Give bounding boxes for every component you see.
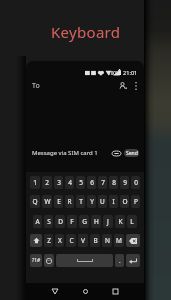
button[interactable]: 7 bbox=[98, 176, 107, 189]
button[interactable]: F bbox=[67, 215, 77, 228]
staticText: E bbox=[57, 197, 61, 206]
staticText: W bbox=[44, 197, 51, 206]
staticText: 1 bbox=[33, 178, 37, 187]
button[interactable]: Enter bbox=[126, 254, 140, 267]
staticText: 9 bbox=[123, 178, 127, 187]
button[interactable]: Space bbox=[56, 254, 113, 267]
button[interactable]: G bbox=[79, 215, 89, 228]
staticText: J bbox=[107, 217, 109, 226]
button[interactable]: Add contact bbox=[115, 78, 131, 94]
staticText: K bbox=[118, 217, 123, 226]
button[interactable]: R bbox=[65, 195, 74, 208]
button[interactable]: Period bbox=[115, 254, 124, 267]
button[interactable]: M bbox=[114, 234, 124, 247]
button[interactable]: 0 bbox=[131, 176, 140, 189]
staticText: T bbox=[79, 197, 83, 206]
staticText: U bbox=[100, 197, 105, 206]
staticText: X bbox=[58, 236, 62, 245]
staticText: ?1# bbox=[32, 257, 41, 264]
button[interactable]: 8 bbox=[109, 176, 118, 189]
button[interactable]: Symbols bbox=[30, 254, 42, 267]
staticText: C bbox=[69, 236, 74, 245]
staticText: M bbox=[116, 236, 122, 245]
button[interactable]: D bbox=[55, 215, 65, 228]
button[interactable]: Backspace bbox=[126, 234, 140, 247]
staticText: 6 bbox=[90, 178, 94, 187]
button[interactable]: Z bbox=[44, 234, 53, 247]
staticText: Z bbox=[47, 236, 51, 245]
staticText: G bbox=[82, 217, 87, 226]
staticText: 0 bbox=[134, 178, 138, 187]
button[interactable]: 3 bbox=[54, 176, 63, 189]
button[interactable]: T bbox=[76, 195, 85, 208]
button[interactable]: Q bbox=[30, 195, 40, 208]
button[interactable]: A bbox=[33, 215, 42, 228]
staticText: I bbox=[112, 197, 115, 206]
button[interactable]: X bbox=[55, 234, 64, 247]
button[interactable]: O bbox=[120, 195, 129, 208]
button[interactable]: J bbox=[103, 215, 113, 228]
button[interactable]: 1 bbox=[30, 176, 40, 189]
staticText: H bbox=[94, 217, 99, 226]
button[interactable]: 9 bbox=[120, 176, 129, 189]
staticText: 100% bbox=[108, 70, 120, 76]
staticText: D bbox=[58, 217, 63, 226]
staticText: S bbox=[47, 217, 51, 226]
button[interactable]: P bbox=[131, 195, 140, 208]
staticText: P bbox=[134, 197, 138, 206]
staticText: To bbox=[32, 81, 40, 91]
staticText: L bbox=[130, 217, 134, 226]
button[interactable]: L bbox=[127, 215, 137, 228]
button[interactable]: H bbox=[91, 215, 101, 228]
button[interactable]: N bbox=[102, 234, 112, 247]
button[interactable]: Y bbox=[87, 195, 96, 208]
button[interactable]: 5 bbox=[76, 176, 85, 189]
button[interactable]: Shift bbox=[30, 234, 42, 247]
button[interactable]: W bbox=[42, 195, 52, 208]
button[interactable]: Back bbox=[46, 283, 64, 300]
button[interactable]: V bbox=[78, 234, 88, 247]
staticText: 7 bbox=[101, 178, 105, 187]
button[interactable]: Emoji bbox=[44, 254, 54, 267]
staticText: 3 bbox=[57, 178, 61, 187]
staticText: Keyboard bbox=[51, 22, 121, 42]
button[interactable]: I bbox=[109, 195, 118, 208]
staticText: 5 bbox=[79, 178, 83, 187]
staticText: R bbox=[67, 197, 72, 206]
staticText: B bbox=[93, 236, 98, 245]
staticText: 21:01 bbox=[123, 69, 138, 77]
button[interactable]: Attach bbox=[110, 147, 123, 160]
staticText: O bbox=[122, 197, 128, 206]
staticText: A bbox=[35, 217, 40, 226]
staticText: V bbox=[81, 236, 85, 245]
staticText: Send bbox=[126, 150, 138, 157]
button[interactable]: Home bbox=[76, 283, 94, 300]
staticText: Q bbox=[32, 197, 38, 206]
staticText: N bbox=[105, 236, 110, 245]
button[interactable]: Send bbox=[124, 149, 139, 157]
button[interactable]: B bbox=[90, 234, 100, 247]
button[interactable]: U bbox=[98, 195, 107, 208]
staticText: Y bbox=[90, 197, 94, 206]
staticText: Message via SIM card 1 bbox=[32, 149, 98, 157]
button[interactable]: S bbox=[44, 215, 53, 228]
button[interactable]: K bbox=[115, 215, 125, 228]
button[interactable]: 4 bbox=[65, 176, 74, 189]
button[interactable]: C bbox=[66, 234, 76, 247]
button[interactable]: More options bbox=[129, 79, 143, 93]
staticText: 2 bbox=[45, 178, 49, 187]
staticText: . bbox=[119, 257, 121, 265]
staticText: F bbox=[70, 217, 74, 226]
button[interactable]: 2 bbox=[42, 176, 52, 189]
staticText: 4 bbox=[68, 178, 72, 187]
button[interactable]: 6 bbox=[87, 176, 96, 189]
button[interactable]: Recents bbox=[106, 283, 124, 300]
button[interactable]: E bbox=[54, 195, 63, 208]
staticText: 8 bbox=[112, 178, 116, 187]
